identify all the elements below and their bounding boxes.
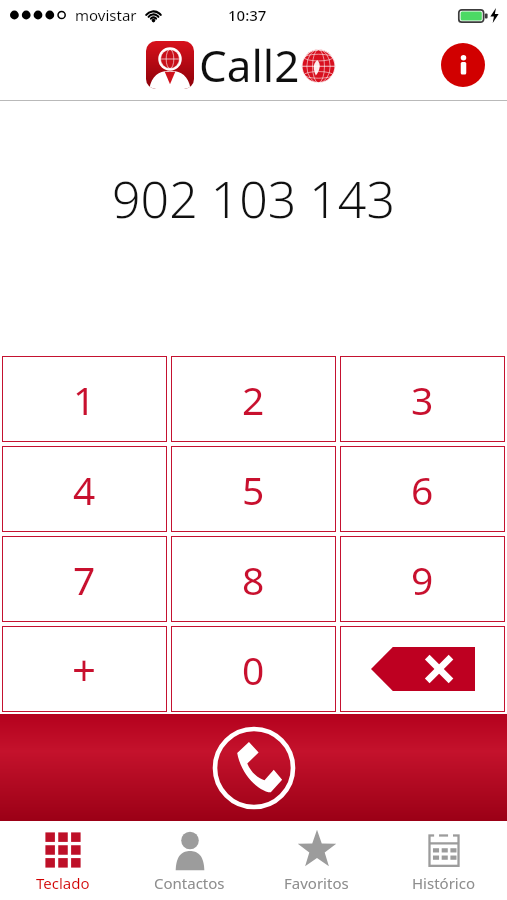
staticText: Contactos <box>154 873 225 893</box>
button[interactable]: Call <box>0 714 507 821</box>
button[interactable]: Histórico <box>380 821 507 900</box>
staticText: 6 <box>411 463 434 516</box>
staticText: 1 <box>73 373 96 426</box>
staticText: Teclado <box>36 873 90 893</box>
button[interactable]: 8 <box>171 536 336 622</box>
staticText: 3 <box>411 373 434 426</box>
button[interactable]: + <box>2 626 167 712</box>
staticText: + <box>72 641 97 698</box>
staticText: 2 <box>242 373 265 426</box>
button[interactable]: 7 <box>2 536 167 622</box>
button[interactable]: 2 <box>171 356 336 442</box>
button[interactable]: 4 <box>2 446 167 532</box>
button[interactable]: 9 <box>340 536 505 622</box>
button[interactable]: Favoritos <box>253 821 380 900</box>
staticText: 5 <box>242 463 265 516</box>
staticText: 4 <box>73 463 96 516</box>
staticText: 0 <box>242 643 265 696</box>
button[interactable]: 6 <box>340 446 505 532</box>
staticText: 902 103 143 <box>112 165 395 233</box>
staticText: 10:37 <box>228 5 267 25</box>
button[interactable]: 3 <box>340 356 505 442</box>
button[interactable]: Teclado <box>0 821 126 900</box>
staticText: movistar <box>75 5 137 25</box>
staticText: 8 <box>242 553 265 606</box>
button[interactable]: 0 <box>171 626 336 712</box>
button[interactable]: Delete <box>340 626 505 712</box>
button[interactable]: 5 <box>171 446 336 532</box>
staticText: Favoritos <box>284 873 349 893</box>
button[interactable]: 1 <box>2 356 167 442</box>
button[interactable]: Contactos <box>126 821 253 900</box>
staticText: 9 <box>411 553 434 606</box>
staticText: Call2 <box>199 35 300 95</box>
button[interactable]: Information <box>441 43 485 87</box>
staticText: Histórico <box>412 873 476 893</box>
staticText: 7 <box>73 553 96 606</box>
